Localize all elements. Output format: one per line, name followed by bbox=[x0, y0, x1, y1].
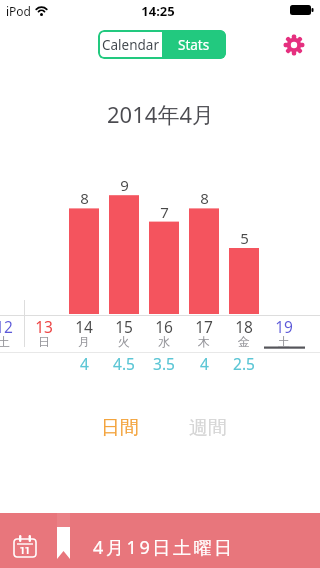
button[interactable]: 日間 bbox=[92, 414, 147, 442]
staticText: 14 bbox=[75, 316, 93, 337]
staticText: 14:25 bbox=[141, 2, 175, 20]
staticText: 8 bbox=[200, 188, 209, 208]
staticText: 7 bbox=[160, 202, 169, 222]
staticText: 4.5 bbox=[113, 353, 135, 374]
staticText: 4月19日土曜日 bbox=[93, 535, 235, 560]
staticText: Calendar bbox=[102, 36, 159, 54]
staticText: 4 bbox=[200, 353, 209, 374]
staticText: 水 bbox=[158, 334, 170, 349]
staticText: 13 bbox=[35, 316, 53, 337]
staticText: 土 bbox=[278, 334, 290, 349]
staticText: 2.5 bbox=[233, 353, 255, 374]
staticText: 8 bbox=[80, 188, 89, 208]
button[interactable] bbox=[283, 34, 305, 56]
staticText: 土 bbox=[0, 334, 10, 349]
staticText: 木 bbox=[198, 334, 210, 349]
button[interactable]: Calendar bbox=[98, 30, 162, 59]
staticText: 金 bbox=[238, 334, 250, 349]
staticText: 18 bbox=[235, 316, 253, 337]
staticText: 2014年4月 bbox=[107, 99, 214, 129]
staticText: 17 bbox=[195, 316, 213, 337]
button[interactable]: 週間 bbox=[180, 414, 235, 442]
staticText: 火 bbox=[118, 334, 130, 349]
button[interactable]: 4月19日土曜日 bbox=[0, 513, 320, 568]
staticText: 3.5 bbox=[153, 353, 175, 374]
staticText: 12 bbox=[0, 316, 13, 337]
staticText: 9 bbox=[120, 175, 129, 195]
staticText: 19 bbox=[275, 316, 293, 337]
staticText: 月 bbox=[78, 334, 90, 349]
staticText: 16 bbox=[155, 316, 173, 337]
staticText: Stats bbox=[178, 36, 210, 54]
staticText: 5 bbox=[240, 228, 249, 248]
staticText: iPod bbox=[6, 3, 31, 19]
staticText: 15 bbox=[115, 316, 133, 337]
staticText: 4 bbox=[80, 353, 89, 374]
button[interactable]: Stats bbox=[162, 30, 226, 59]
staticText: 週間 bbox=[189, 416, 227, 440]
staticText: 日間 bbox=[101, 416, 139, 440]
staticText: 日 bbox=[38, 334, 50, 349]
